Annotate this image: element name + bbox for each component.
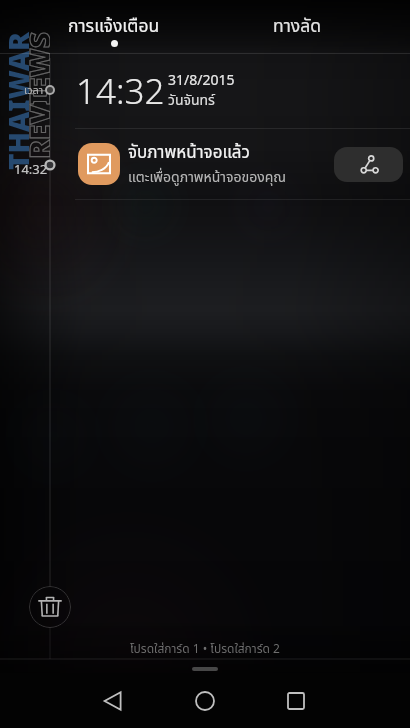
staticText: 14:32 [76,67,165,115]
button[interactable]: ทางลัด [205,0,388,53]
staticText: แตะเพื่อดูภาพหน้าจอของคุณ [128,167,287,188]
button[interactable]: Share [334,147,403,182]
staticText: ทางลัด [273,13,321,39]
staticText: 14:32 [14,160,48,178]
staticText: โปรดใส่การ์ด 1 • โปรดใส่การ์ด 2 [130,640,280,658]
staticText: เวลา [24,82,44,99]
button[interactable]: Back [89,677,137,725]
staticText: THAIWARE [0,31,29,171]
staticText: REVIEWS [20,32,50,159]
button[interactable]: Home [181,677,229,725]
staticText: วันจันทร์ [168,90,215,111]
button[interactable]: จับภาพหน้าจอแล้ว [0,129,410,199]
button[interactable]: Recents [272,677,320,725]
button[interactable]: Clear all notifications [29,586,71,628]
staticText: จับภาพหน้าจอแล้ว [128,140,250,166]
staticText: 31/8/2015 [168,70,235,89]
button[interactable]: การแจ้งเตือน [22,0,205,53]
staticText: การแจ้งเตือน [68,13,160,39]
